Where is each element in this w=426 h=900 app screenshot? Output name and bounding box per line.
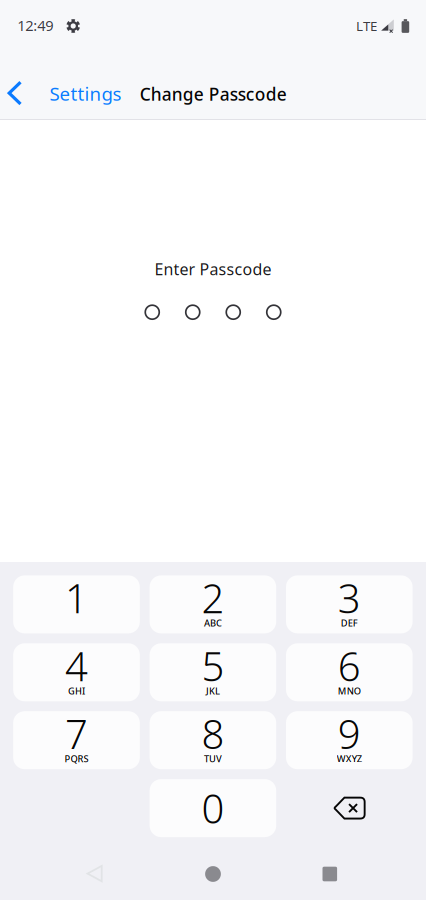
button[interactable]: 6	[286, 643, 413, 701]
staticText: LTE	[356, 17, 377, 35]
staticText: 9	[338, 707, 361, 760]
button[interactable]: Quick settings	[60, 13, 86, 39]
staticText: 6	[338, 639, 361, 692]
staticText: 1	[65, 571, 88, 624]
button[interactable]: 3	[286, 575, 413, 633]
button[interactable]: 0	[150, 779, 276, 837]
staticText: TUV	[204, 752, 222, 765]
button[interactable]: 4	[13, 643, 140, 701]
staticText: 0	[201, 781, 224, 835]
staticText: MNO	[338, 685, 361, 697]
button[interactable]: 2	[150, 575, 276, 633]
button[interactable]: Settings	[0, 56, 122, 120]
staticText: 5	[201, 639, 224, 692]
button[interactable]: 1	[13, 575, 140, 633]
staticText: 4	[65, 639, 88, 692]
staticText: 7	[65, 707, 88, 760]
staticText: Change Passcode	[140, 82, 287, 105]
staticText: DEF	[341, 617, 358, 629]
staticText: 3	[338, 571, 361, 624]
button[interactable]: Delete	[286, 779, 413, 837]
staticText: 8	[201, 707, 224, 760]
button[interactable]: Home	[185, 852, 241, 896]
button[interactable]: 7	[13, 711, 140, 769]
button[interactable]: 8	[150, 711, 276, 769]
staticText: GHI	[68, 685, 85, 697]
button[interactable]: Recent apps	[302, 852, 358, 896]
staticText: WXYZ	[337, 752, 362, 765]
staticText: 12:49	[17, 16, 53, 35]
staticText: Settings	[49, 81, 121, 106]
staticText: Enter Passcode	[154, 258, 271, 280]
button[interactable]: 9	[286, 711, 413, 769]
button[interactable]: 5	[150, 643, 276, 701]
staticText: ABC	[204, 617, 222, 629]
staticText: JKL	[206, 685, 220, 697]
staticText: PQRS	[64, 752, 88, 765]
staticText: 2	[201, 571, 224, 624]
